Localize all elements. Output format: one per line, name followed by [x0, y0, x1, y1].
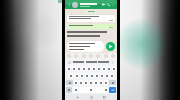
button[interactable]: Home — [90, 96, 93, 99]
button[interactable]: key — [80, 73, 84, 78]
button[interactable]: Emoji — [68, 61, 71, 64]
button[interactable]: key — [97, 66, 101, 71]
button[interactable]: key — [100, 73, 104, 78]
button[interactable]: Send — [106, 42, 115, 51]
button[interactable] — [67, 24, 115, 29]
button[interactable]: Contact photo — [72, 2, 78, 8]
button[interactable]: ?123 — [66, 87, 72, 93]
button[interactable]: Recents — [103, 96, 106, 99]
button[interactable]: key — [72, 66, 76, 71]
button[interactable]: More options — [111, 3, 115, 7]
button[interactable]: key — [68, 73, 73, 78]
button[interactable]: key — [87, 66, 91, 71]
button[interactable]: key — [104, 80, 108, 85]
button[interactable]: key — [102, 66, 106, 71]
button[interactable]: Tool 1 — [74, 54, 78, 58]
button[interactable]: key — [90, 73, 94, 78]
button[interactable]: Tool 5 — [104, 54, 108, 58]
button[interactable]: Backspace — [109, 80, 116, 85]
button[interactable]: key — [74, 73, 79, 78]
button[interactable] — [67, 15, 115, 22]
button[interactable]: Video call — [101, 2, 106, 7]
button[interactable]: Keyboard settings — [111, 61, 114, 64]
button[interactable]: Back — [76, 96, 79, 99]
button[interactable]: Tool 6 — [111, 54, 115, 58]
button[interactable]: key — [110, 73, 114, 78]
button[interactable]: key — [99, 80, 103, 85]
button[interactable]: key — [77, 66, 81, 71]
button[interactable]: key — [79, 80, 83, 85]
button[interactable]: Tool 4 — [96, 54, 100, 58]
button[interactable]: key — [82, 66, 86, 71]
button[interactable]: Tool 2 — [82, 54, 86, 58]
button[interactable]: key — [89, 80, 93, 85]
button[interactable]: key — [74, 80, 78, 85]
button[interactable]: , — [73, 87, 78, 93]
button[interactable]: Shift — [66, 80, 73, 85]
button[interactable]: key — [95, 73, 99, 78]
button[interactable]: Back — [67, 2, 72, 7]
button[interactable]: space — [79, 87, 102, 93]
button[interactable]: key — [92, 66, 96, 71]
button[interactable]: key — [112, 66, 116, 71]
button[interactable]: key — [66, 66, 71, 71]
button[interactable]: key — [105, 73, 109, 78]
button[interactable] — [67, 41, 104, 52]
button[interactable]: key — [107, 66, 111, 71]
button[interactable]: Tool 3 — [89, 54, 93, 58]
button[interactable]: key — [85, 73, 89, 78]
button[interactable]: key — [84, 80, 88, 85]
button[interactable]: Tool 0 — [67, 54, 71, 58]
button[interactable]: key — [94, 80, 98, 85]
button[interactable]: Call — [106, 2, 111, 7]
button[interactable]: . — [103, 87, 108, 93]
button[interactable]: Enter — [109, 87, 116, 93]
